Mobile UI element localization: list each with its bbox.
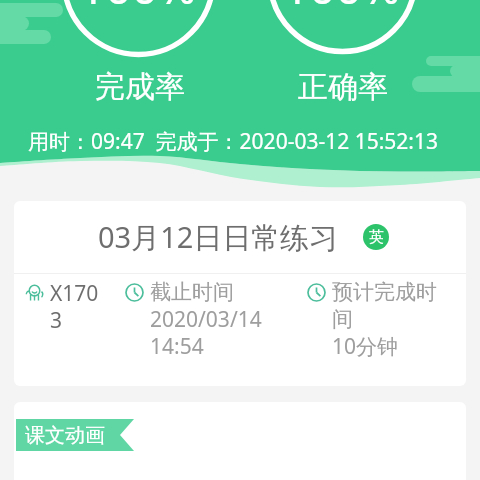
staticText: 完成率 (90, 68, 190, 106)
staticText: 正确率 (293, 68, 393, 106)
staticText: 英 (369, 228, 384, 247)
staticText: 03月12日日常练习 (98, 217, 339, 257)
staticText: 用时：09:47 完成于：2020-03-12 15:52:13 (28, 127, 439, 156)
staticText: 课文动画 (25, 423, 105, 448)
staticText: 10分钟 (332, 332, 399, 361)
button[interactable]: 03月12日日常练习 (14, 201, 466, 386)
staticText: 2020/03/14 14:54 (150, 305, 272, 360)
button[interactable]: 课文动画 (16, 419, 134, 451)
staticText: 100% (283, 0, 401, 18)
staticText: 100% (79, 0, 197, 18)
staticText: X1703 (50, 279, 102, 334)
staticText: 预计完成时间 (332, 279, 446, 332)
staticText: 截止时间 (150, 279, 234, 305)
